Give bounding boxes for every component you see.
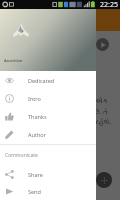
staticText: Communicate — [5, 152, 38, 159]
button[interactable]: Author — [0, 125, 96, 143]
button[interactable]: Dedicated — [0, 71, 96, 89]
staticText: 22:25 — [100, 0, 118, 9]
staticText: Intro — [28, 95, 41, 102]
button[interactable]: Intro — [0, 89, 96, 107]
button[interactable]: Thanks — [0, 107, 96, 125]
staticText: Aavishkar — [4, 58, 23, 63]
staticText: Send — [28, 188, 41, 195]
button[interactable]: Send — [0, 183, 96, 200]
staticText: Dedicated — [28, 77, 55, 84]
button[interactable]: Play audio — [96, 38, 109, 51]
button[interactable]: Change font size — [96, 172, 112, 188]
button[interactable]: Share — [0, 165, 96, 183]
staticText: મારું જીવન એક સુંદર કાવ્ય છે. તે હંમેશા … — [62, 96, 116, 126]
staticText: Thanks — [28, 113, 47, 120]
staticText: Share — [28, 171, 43, 178]
staticText: Author — [28, 131, 46, 138]
